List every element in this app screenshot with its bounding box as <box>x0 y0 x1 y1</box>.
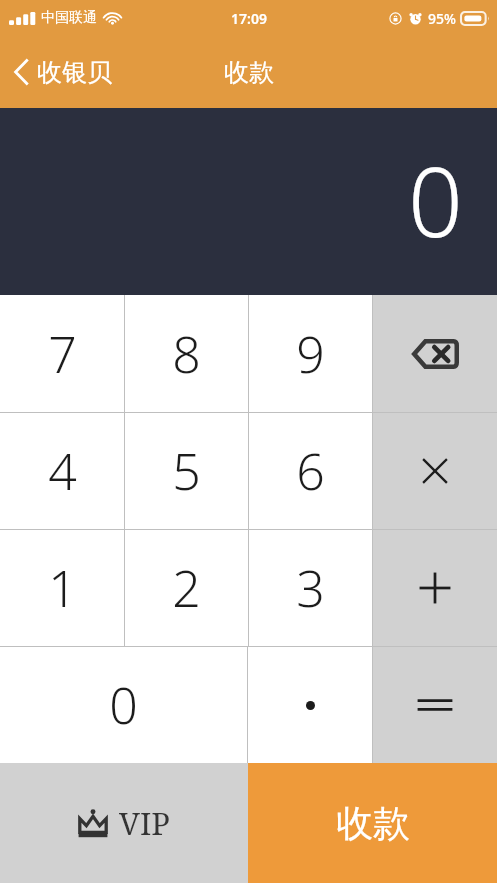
button[interactable]: 5 <box>125 413 248 529</box>
button[interactable]: 收款 <box>248 763 497 883</box>
button[interactable]: 4 <box>0 413 124 529</box>
button[interactable]: 7 <box>0 295 124 412</box>
staticText: 4 <box>48 437 77 505</box>
staticText: 2 <box>172 554 201 622</box>
button[interactable]: 2 <box>125 530 248 646</box>
staticText: 17:09 <box>231 9 267 28</box>
button[interactable]: Multiply <box>373 413 497 529</box>
staticText: 95% <box>428 9 456 28</box>
button[interactable]: 收银贝 <box>0 36 124 108</box>
staticText: 9 <box>296 320 325 388</box>
staticText: 0 <box>109 671 138 739</box>
button[interactable]: Backspace <box>373 295 497 412</box>
staticText: VIP <box>119 802 171 844</box>
button[interactable]: Equals <box>373 647 497 763</box>
staticText: 3 <box>296 554 325 622</box>
button[interactable]: 3 <box>249 530 372 646</box>
staticText: 7 <box>48 320 77 388</box>
button[interactable]: VIP <box>0 763 248 883</box>
button[interactable]: 1 <box>0 530 124 646</box>
button[interactable] <box>248 647 372 763</box>
staticText: 6 <box>296 437 325 505</box>
staticText: 0 <box>408 134 463 265</box>
staticText: 收款 <box>224 57 274 88</box>
button[interactable]: 9 <box>249 295 372 412</box>
staticText: 8 <box>172 320 201 388</box>
button[interactable]: 8 <box>125 295 248 412</box>
button[interactable]: 6 <box>249 413 372 529</box>
staticText: 收款 <box>336 800 410 847</box>
button[interactable]: Add <box>373 530 497 646</box>
staticText: 5 <box>172 437 201 505</box>
staticText: 1 <box>48 554 77 622</box>
button[interactable]: 0 <box>0 647 247 763</box>
staticText: 中国联通 <box>41 9 97 27</box>
staticText: 收银贝 <box>37 57 112 88</box>
